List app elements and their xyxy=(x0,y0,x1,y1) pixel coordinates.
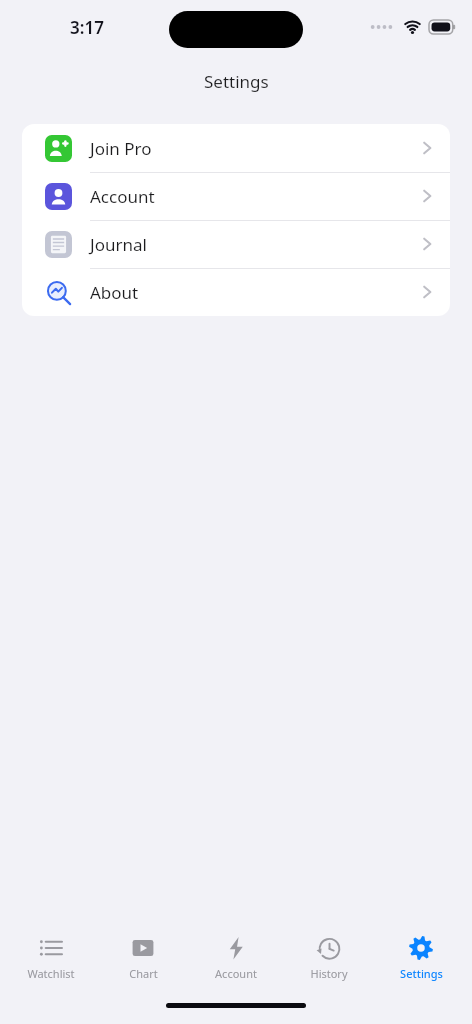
button[interactable]: About xyxy=(22,268,450,316)
button[interactable]: Account xyxy=(194,925,278,990)
button[interactable]: History xyxy=(287,925,371,990)
button[interactable]: Journal xyxy=(22,220,450,268)
staticText: 3:17 xyxy=(70,16,104,39)
button[interactable]: Join Pro xyxy=(22,124,450,172)
staticText: Join Pro xyxy=(90,137,436,160)
staticText: Journal xyxy=(90,233,436,256)
button[interactable]: Account xyxy=(22,172,450,220)
button[interactable]: Watchlist xyxy=(9,925,93,990)
staticText: Chart xyxy=(129,966,158,981)
staticText: Account xyxy=(90,185,436,208)
staticText: Watchlist xyxy=(27,966,75,981)
staticText: Account xyxy=(215,966,257,981)
staticText: About xyxy=(90,281,436,304)
staticText: Settings xyxy=(400,966,443,981)
staticText: History xyxy=(310,966,348,981)
button[interactable]: Chart xyxy=(101,925,185,990)
button[interactable]: Settings xyxy=(379,925,463,990)
staticText: Settings xyxy=(204,70,269,93)
